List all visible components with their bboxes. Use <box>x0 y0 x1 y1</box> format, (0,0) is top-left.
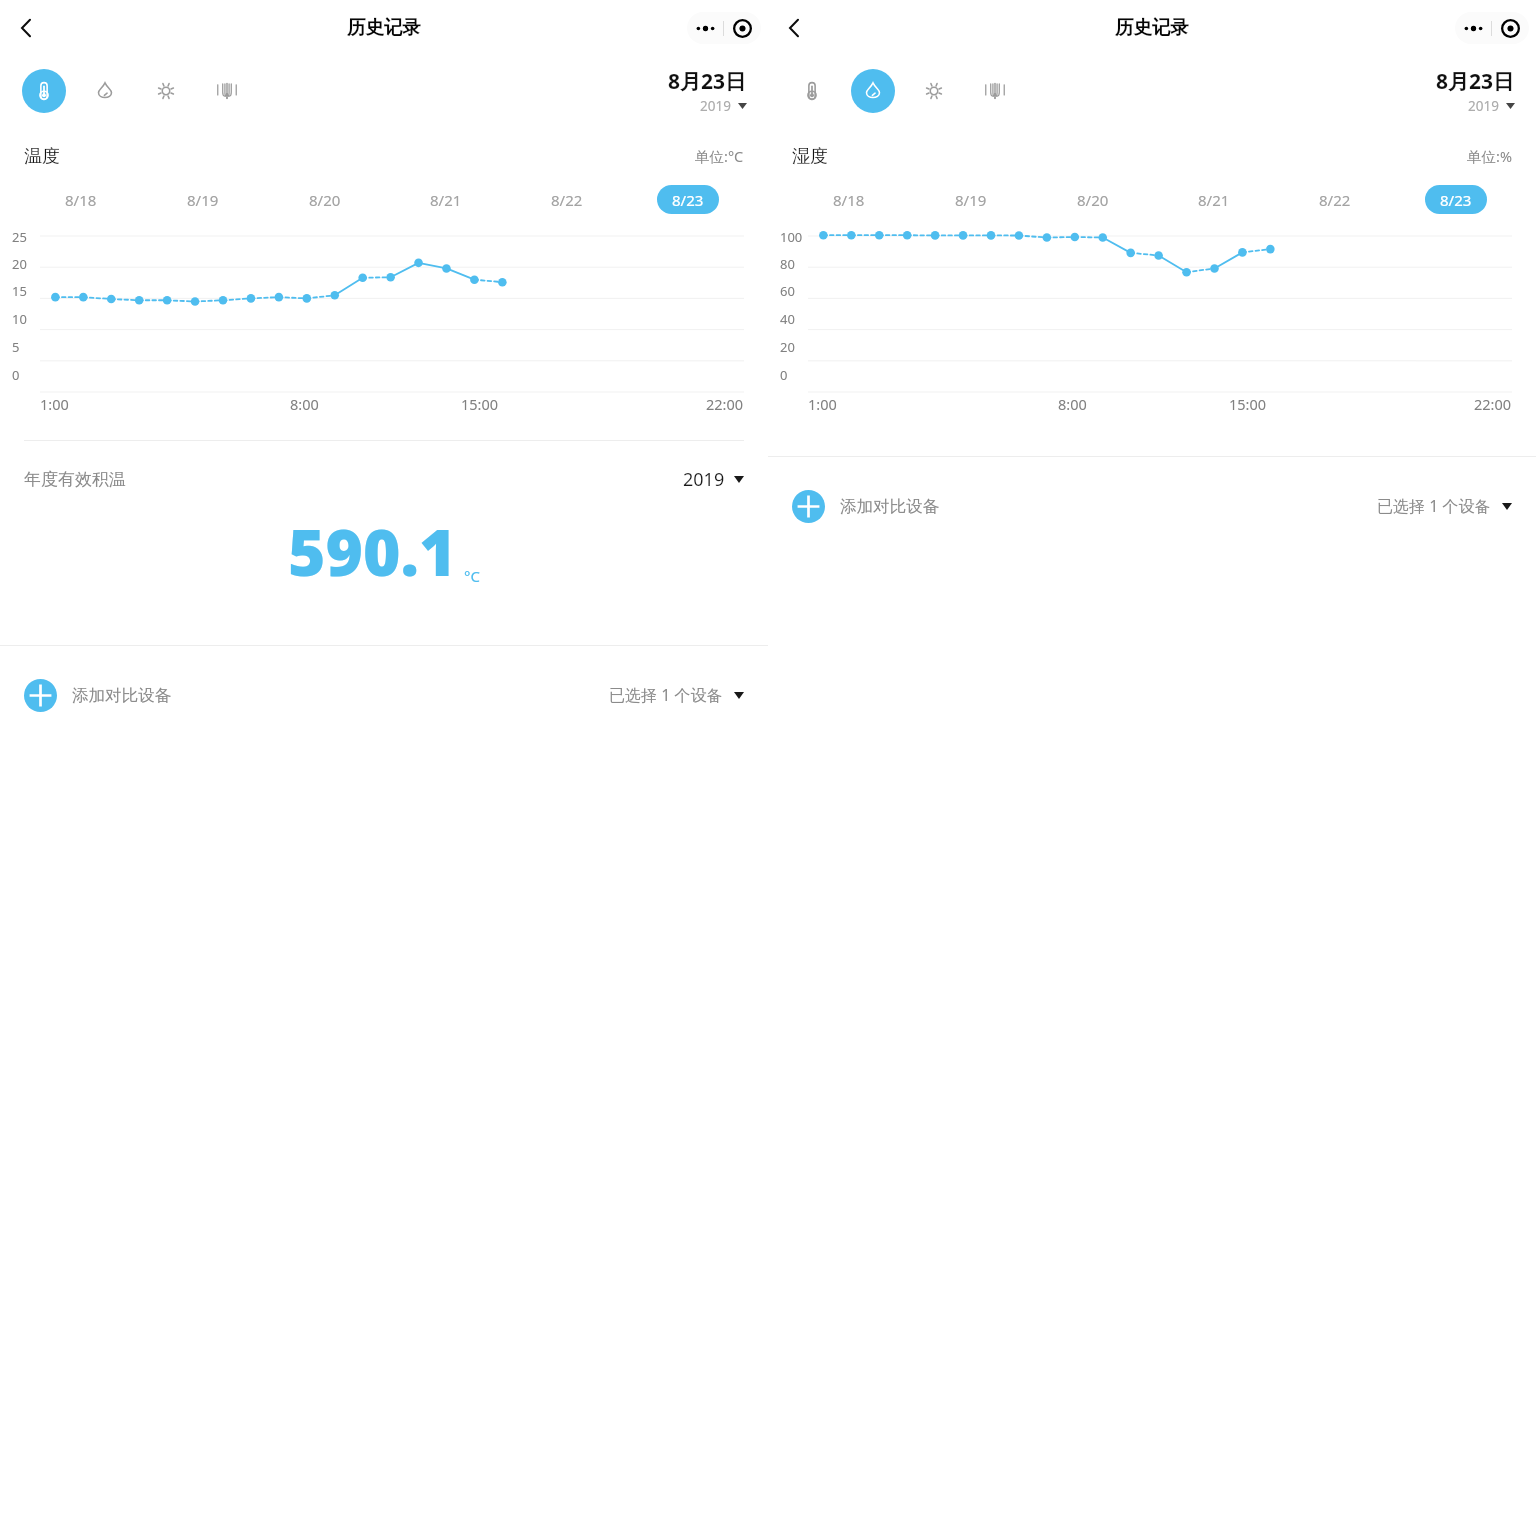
staticText: 40 <box>780 310 795 328</box>
button[interactable]: Light <box>912 69 956 113</box>
button[interactable]: 已选择 1 个设备 <box>609 684 744 706</box>
button[interactable]: Close <box>724 12 761 44</box>
staticText: 2019 <box>700 97 731 115</box>
staticText: 22:00 <box>706 394 744 414</box>
staticText: 60 <box>780 282 795 300</box>
button[interactable]: 8/23 <box>657 185 719 214</box>
staticText: 1:00 <box>40 394 69 414</box>
staticText: 20 <box>12 255 27 273</box>
staticText: 年度有效积温 <box>24 469 126 490</box>
button[interactable]: Back <box>4 6 48 50</box>
staticText: 8/18 <box>833 190 865 210</box>
staticText: 已选择 1 个设备 <box>609 684 723 706</box>
button[interactable]: Soil moisture <box>973 69 1017 113</box>
button[interactable]: Temperature <box>790 69 834 113</box>
staticText: 0 <box>780 366 788 384</box>
staticText: 8/18 <box>65 190 97 210</box>
staticText: 590.1 <box>288 508 457 595</box>
staticText: 8/20 <box>1077 190 1109 210</box>
button[interactable]: 8/23 <box>1425 185 1487 214</box>
button[interactable]: 8/18 <box>824 185 874 214</box>
button[interactable]: Humidity <box>83 69 127 113</box>
button[interactable]: Back <box>772 6 816 50</box>
staticText: 湿度 <box>792 145 828 168</box>
staticText: 1:00 <box>808 394 837 414</box>
staticText: 8:00 <box>1058 394 1087 414</box>
staticText: 0 <box>12 366 20 384</box>
button[interactable]: 8/19 <box>946 185 996 214</box>
staticText: 8/19 <box>955 190 987 210</box>
button[interactable]: More <box>1455 12 1491 44</box>
button[interactable]: 8/21 <box>1189 185 1239 214</box>
staticText: 单位:% <box>1467 146 1512 166</box>
staticText: 15 <box>12 282 27 300</box>
staticText: 8月23日 <box>668 67 747 96</box>
staticText: 8/22 <box>551 190 583 210</box>
staticText: 8/23 <box>1440 190 1472 210</box>
button[interactable]: 8/20 <box>300 185 350 214</box>
staticText: 已选择 1 个设备 <box>1377 495 1491 517</box>
button[interactable]: Humidity <box>851 69 895 113</box>
button[interactable]: 8月23日 <box>1436 67 1515 115</box>
button[interactable]: Temperature <box>22 69 66 113</box>
button[interactable]: 8/22 <box>542 185 592 214</box>
staticText: 8/22 <box>1319 190 1351 210</box>
staticText: 8/21 <box>430 190 462 210</box>
staticText: 8/23 <box>672 190 704 210</box>
button[interactable]: 8/18 <box>56 185 106 214</box>
button[interactable]: 8/19 <box>178 185 228 214</box>
staticText: 22:00 <box>1474 394 1512 414</box>
staticText: 100 <box>780 228 803 246</box>
button[interactable]: 8/22 <box>1310 185 1360 214</box>
button[interactable]: 8月23日 <box>668 67 747 115</box>
staticText: 历史记录 <box>347 16 421 39</box>
staticText: 8/19 <box>187 190 219 210</box>
button[interactable]: 已选择 1 个设备 <box>1377 495 1512 517</box>
staticText: 25 <box>12 228 27 246</box>
staticText: 2019 <box>1468 97 1499 115</box>
staticText: 20 <box>780 338 795 356</box>
button[interactable]: 2019 <box>683 467 744 492</box>
staticText: °C <box>464 566 480 586</box>
staticText: 添加对比设备 <box>840 496 939 517</box>
staticText: 80 <box>780 255 795 273</box>
staticText: 温度 <box>24 145 60 168</box>
button[interactable]: 8/20 <box>1068 185 1118 214</box>
staticText: 8月23日 <box>1436 67 1515 96</box>
staticText: 15:00 <box>1229 394 1267 414</box>
staticText: 8/20 <box>309 190 341 210</box>
staticText: 2019 <box>683 467 725 492</box>
staticText: 10 <box>12 310 27 328</box>
button[interactable]: 添加对比设备 <box>24 679 171 712</box>
button[interactable]: More <box>687 12 723 44</box>
button[interactable]: Light <box>144 69 188 113</box>
staticText: 添加对比设备 <box>72 685 171 706</box>
staticText: 单位:°C <box>695 146 744 166</box>
button[interactable]: Close <box>1492 12 1529 44</box>
staticText: 15:00 <box>461 394 499 414</box>
staticText: 8:00 <box>290 394 319 414</box>
button[interactable]: Soil moisture <box>205 69 249 113</box>
button[interactable]: 8/21 <box>421 185 471 214</box>
staticText: 8/21 <box>1198 190 1230 210</box>
staticText: 5 <box>12 338 20 356</box>
button[interactable]: 添加对比设备 <box>792 490 939 523</box>
staticText: 历史记录 <box>1115 16 1189 39</box>
